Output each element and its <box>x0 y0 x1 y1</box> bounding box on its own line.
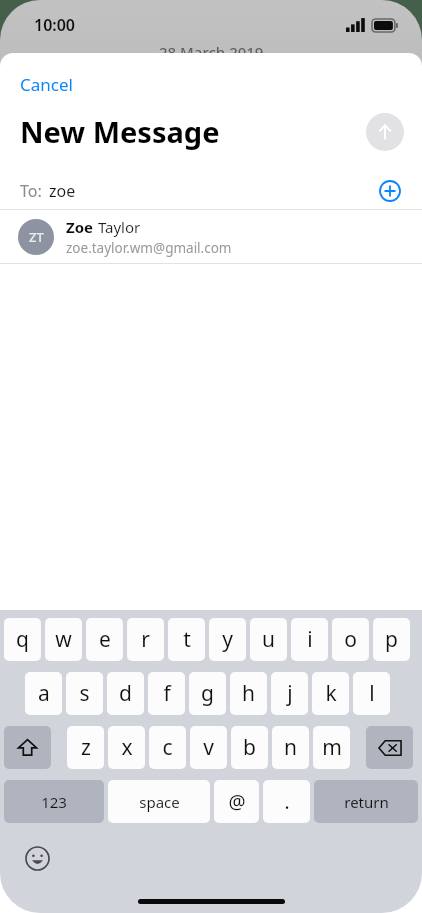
button[interactable]: m <box>313 726 350 769</box>
button[interactable]: return <box>314 780 418 823</box>
staticText: w <box>55 625 72 654</box>
staticText: n <box>284 733 297 762</box>
button[interactable]: Emoji <box>22 843 52 873</box>
staticText: 10:00 <box>34 14 76 36</box>
staticText: o <box>344 625 357 654</box>
staticText: p <box>385 625 398 654</box>
staticText: y <box>222 625 233 654</box>
staticText: b <box>243 733 256 762</box>
staticText: k <box>325 679 337 708</box>
button[interactable]: e <box>86 618 123 661</box>
button[interactable]: c <box>149 726 186 769</box>
button[interactable]: q <box>4 618 41 661</box>
staticText: . <box>284 789 290 815</box>
button[interactable]: y <box>209 618 246 661</box>
button[interactable]: z <box>67 726 104 769</box>
other: Shift <box>4 726 51 769</box>
button[interactable]: x <box>108 726 145 769</box>
button[interactable]: p <box>373 618 410 661</box>
staticText: d <box>119 679 132 708</box>
button[interactable]: r <box>127 618 164 661</box>
staticText: @ <box>228 789 246 815</box>
staticText: z <box>81 733 91 762</box>
staticText: 123 <box>41 792 67 812</box>
button[interactable]: Cancel <box>12 69 81 100</box>
staticText: t <box>183 625 191 654</box>
staticText: New Message <box>20 112 220 151</box>
staticText: v <box>203 733 214 762</box>
staticText: a <box>38 679 50 708</box>
button[interactable]: @ <box>214 780 259 823</box>
staticText: l <box>369 679 375 708</box>
button[interactable]: k <box>312 672 349 715</box>
staticText: x <box>121 733 133 762</box>
staticText: f <box>163 679 171 708</box>
staticText: space <box>139 792 180 812</box>
button[interactable]: o <box>332 618 369 661</box>
button[interactable]: d <box>107 672 144 715</box>
button[interactable]: h <box>230 672 267 715</box>
button[interactable]: a <box>25 672 62 715</box>
staticText: i <box>307 625 313 654</box>
button[interactable]: Send <box>366 113 404 151</box>
button[interactable]: s <box>66 672 103 715</box>
staticText: zoe.taylor.wm@gmail.com <box>66 239 232 257</box>
button[interactable]: j <box>271 672 308 715</box>
staticText: Cancel <box>20 73 73 96</box>
staticText: j <box>287 679 293 708</box>
other: Backspace <box>366 726 413 769</box>
button[interactable]: 123 <box>4 780 104 823</box>
button[interactable]: g <box>189 672 226 715</box>
staticText: return <box>344 792 389 812</box>
staticText: Zoe <box>66 217 94 237</box>
button[interactable]: b <box>231 726 268 769</box>
button[interactable]: v <box>190 726 227 769</box>
staticText: m <box>322 733 342 762</box>
button[interactable]: To: <box>0 173 422 209</box>
button[interactable]: w <box>45 618 82 661</box>
staticText: ZT <box>29 228 44 246</box>
staticText: q <box>16 625 29 654</box>
button[interactable]: f <box>148 672 185 715</box>
staticText: r <box>141 625 150 654</box>
button[interactable]: t <box>168 618 205 661</box>
staticText: s <box>79 679 90 708</box>
staticText: 28 March 2019 <box>159 42 264 62</box>
button[interactable]: space <box>108 780 210 823</box>
staticText: Taylor <box>94 217 141 237</box>
button[interactable]: ZT <box>0 210 422 263</box>
staticText: g <box>201 679 214 708</box>
button[interactable]: Shift <box>4 726 51 769</box>
button[interactable]: u <box>250 618 287 661</box>
button[interactable]: l <box>353 672 390 715</box>
staticText: To: <box>20 180 42 202</box>
button[interactable]: Backspace <box>366 726 413 769</box>
button[interactable]: Add contact <box>376 177 404 205</box>
staticText: zoe <box>49 180 76 202</box>
staticText: u <box>262 625 275 654</box>
staticText: e <box>99 625 111 654</box>
staticText: c <box>162 733 173 762</box>
staticText: h <box>242 679 255 708</box>
button[interactable]: i <box>291 618 328 661</box>
button[interactable]: . <box>263 780 310 823</box>
button[interactable]: n <box>272 726 309 769</box>
